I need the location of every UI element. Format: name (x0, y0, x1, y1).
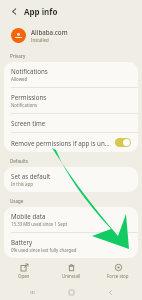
button[interactable]: Back (103, 285, 117, 299)
staticText: Screen time (11, 119, 46, 127)
staticText: Uninstall (62, 273, 81, 279)
staticText: Notifications (11, 67, 48, 75)
staticText: App info (24, 6, 58, 17)
button[interactable]: Permissions (4, 88, 138, 114)
button[interactable]: Recents (25, 285, 39, 299)
staticText: Usage (10, 198, 24, 204)
staticText: Permissions (11, 93, 47, 101)
button[interactable]: Set as default (4, 167, 138, 192)
staticText: Notifications (11, 102, 38, 108)
button[interactable]: Uninstall (48, 261, 94, 282)
staticText: Open (18, 273, 30, 279)
button[interactable]: Home (64, 285, 78, 299)
staticText: Privacy (10, 53, 26, 59)
button[interactable]: Back (8, 5, 20, 17)
staticText: Battery (11, 238, 33, 246)
button[interactable]: Force stop (95, 261, 141, 282)
staticText: 0% used since last fully charged (11, 247, 77, 253)
button[interactable]: Notifications (4, 62, 138, 88)
button[interactable]: Mobile data (4, 207, 138, 233)
button[interactable]: Toggle remove permissions (115, 138, 131, 147)
staticText: Allowed (11, 76, 28, 82)
staticText: Set as default (11, 172, 51, 180)
staticText: Alibaba.com (31, 28, 68, 36)
button[interactable]: Battery (4, 233, 138, 258)
staticText: Installed (31, 37, 49, 43)
button[interactable]: Remove permissions if app is unused (4, 133, 138, 152)
staticText: Mobile data (11, 212, 46, 220)
staticText: 15.33 MB used since 1 Sept (11, 221, 67, 227)
staticText: Defaults (10, 158, 28, 164)
staticText: In this app (11, 181, 33, 187)
staticText: Force stop (107, 273, 129, 279)
staticText: Remove permissions if app is unused (11, 139, 112, 147)
button[interactable]: Screen time (4, 114, 138, 133)
button[interactable]: Open (1, 261, 47, 282)
